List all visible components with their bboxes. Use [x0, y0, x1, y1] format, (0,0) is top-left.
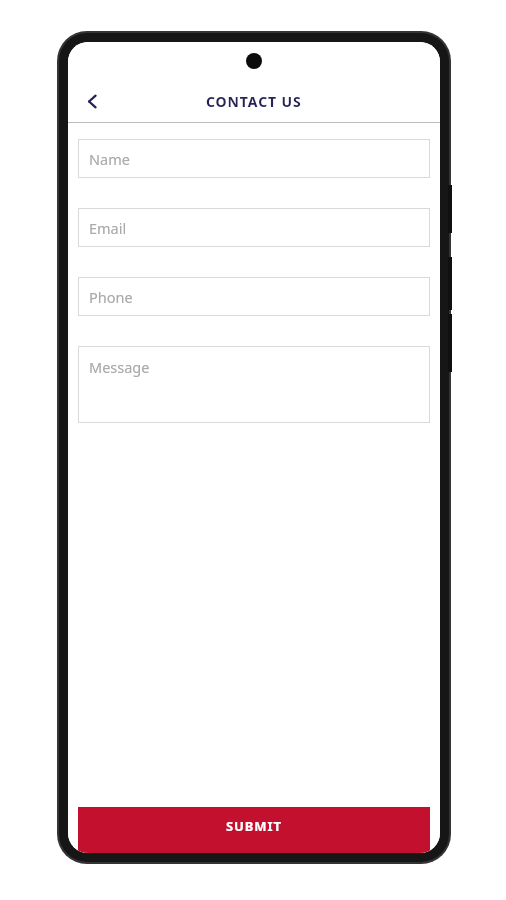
button[interactable]: Name [78, 139, 430, 178]
button[interactable]: Back [68, 80, 116, 122]
button[interactable]: SUBMIT [78, 807, 430, 853]
staticText: Name [89, 149, 130, 169]
staticText: Phone [89, 287, 133, 307]
staticText: CONTACT US [206, 92, 302, 111]
button[interactable]: Phone [78, 277, 430, 316]
button[interactable]: Email [78, 208, 430, 247]
staticText: Email [89, 218, 127, 238]
button[interactable]: Message [78, 346, 430, 423]
staticText: Message [89, 357, 150, 377]
staticText: SUBMIT [226, 817, 282, 835]
